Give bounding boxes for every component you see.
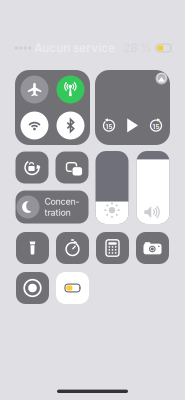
button[interactable]: Minuteur [56,232,89,264]
button[interactable]: Enregistrement de l'écran [16,272,49,304]
staticText: 15 [105,123,112,130]
button[interactable]: Mode économie d'énergie [56,272,89,304]
button[interactable]: Appareil photo [136,232,169,264]
button[interactable]: Verrouillage de l'orientation [15,151,48,183]
button[interactable]: Mode Avion [19,74,49,104]
staticText: tration [44,207,70,218]
button[interactable]: Luminosité [95,151,128,224]
button[interactable]: Bluetooth [55,110,85,140]
button[interactable]: Avancer de 15 secondes [149,118,163,133]
staticText: Aucun service [34,41,115,55]
button[interactable]: Calculette [96,232,129,264]
button[interactable]: Recopie de l'écran [55,151,88,183]
button[interactable]: Concen- [15,190,88,223]
staticText: Concen- [44,196,79,207]
button[interactable]: Wi-Fi [19,110,49,140]
button[interactable]: Données cellulaires [55,74,85,104]
button[interactable]: Reculer de 15 secondes [102,118,116,133]
button[interactable]: Volume [136,151,169,224]
staticText: 15 [152,123,159,130]
button[interactable]: AirPlay [155,72,167,84]
button[interactable]: Lampe torche [16,232,49,264]
button[interactable]: Lecture [126,118,139,133]
